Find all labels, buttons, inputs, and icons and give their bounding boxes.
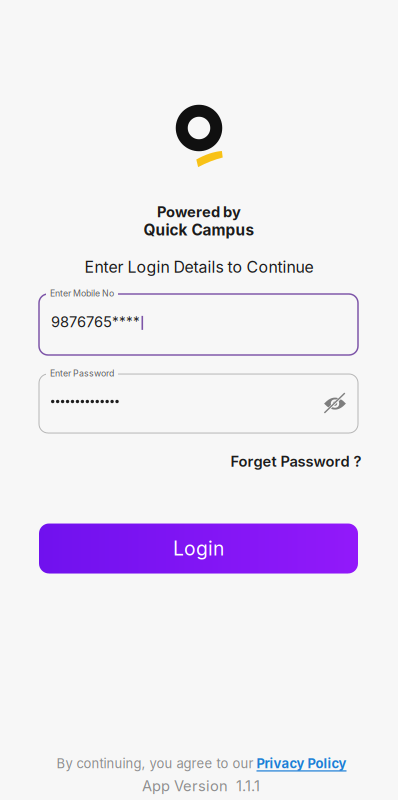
staticText: Quick Campus [143, 221, 254, 239]
staticText: Enter Mobile No [50, 288, 114, 299]
staticText: Login [173, 537, 224, 560]
staticText: Forget Password ? [230, 453, 361, 470]
button[interactable]: Show password [315, 383, 355, 423]
button[interactable]: Login [39, 523, 358, 573]
button[interactable]: Forget Password ? [220, 446, 367, 477]
staticText: **** [112, 313, 140, 329]
button[interactable]: Privacy Policy [256, 756, 346, 771]
staticText: By continuing, you agree to our [56, 756, 253, 771]
staticText: Enter Login Details to Continue [84, 257, 313, 277]
staticText: App Version 1.1.1 [142, 777, 260, 795]
staticText: Privacy Policy [256, 756, 346, 771]
staticText: Enter Password [50, 368, 114, 379]
staticText: Powered by [157, 203, 241, 221]
staticText: 9876765 [51, 313, 112, 331]
